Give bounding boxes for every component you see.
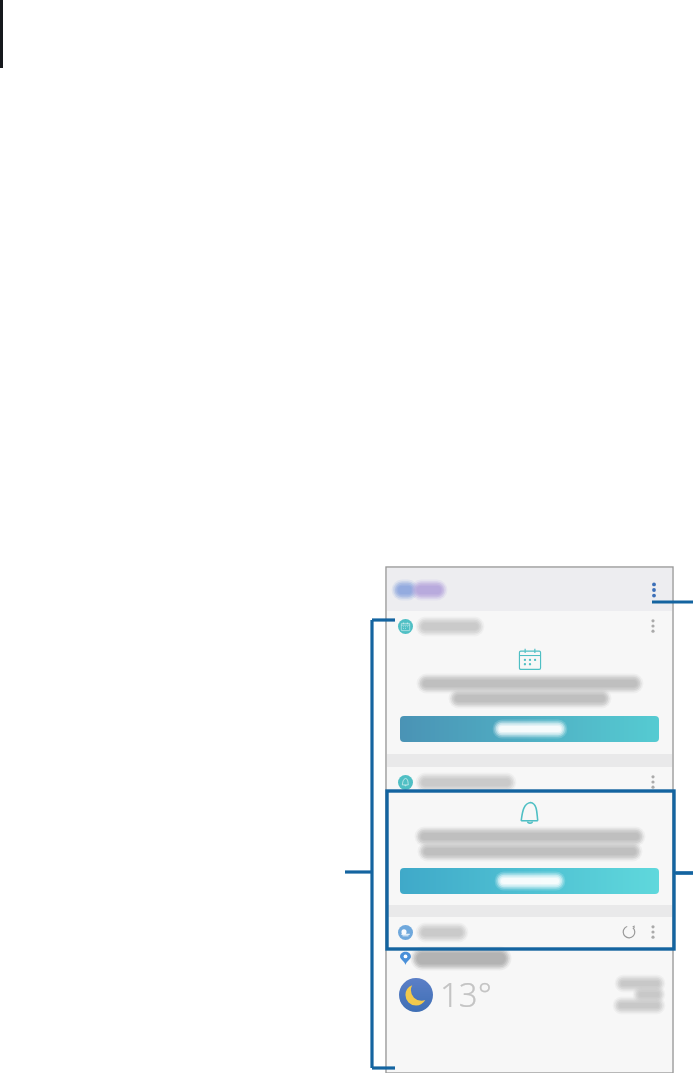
button[interactable] (400, 716, 659, 742)
button[interactable]: Refresh weather (619, 922, 639, 942)
button[interactable]: Reminder options (643, 772, 663, 792)
button[interactable]: My schedule options (643, 616, 663, 636)
staticText: 13° (440, 972, 492, 1017)
button[interactable]: Weather options (643, 922, 663, 942)
button[interactable]: Reminder options (387, 767, 672, 905)
button[interactable]: More options (644, 580, 664, 600)
button[interactable]: My schedule options (387, 611, 672, 754)
button[interactable] (400, 868, 659, 894)
button[interactable]: Refresh weather (387, 917, 672, 1025)
